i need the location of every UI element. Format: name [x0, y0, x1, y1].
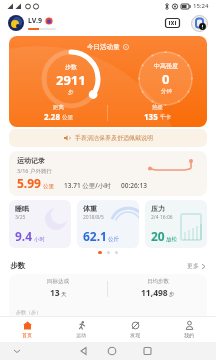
staticText: 目标达成 [47, 278, 69, 285]
staticText: 2018/8/5 [83, 214, 104, 221]
button[interactable]: 我的 [162, 317, 216, 342]
staticText: 热量 [152, 104, 163, 111]
staticText: 运动记录 [17, 156, 45, 165]
button[interactable]: 手表清洁保养及舒适佩戴说明 [9, 129, 207, 147]
staticText: 62.1 [83, 228, 107, 244]
staticText: 睡眠 [15, 204, 29, 213]
staticText: 3/16 户外骑行 [17, 167, 52, 175]
button[interactable]: 今日活动量 [9, 36, 207, 127]
staticText: 9.4 [15, 228, 33, 244]
staticText: 公斤 [108, 236, 119, 243]
staticText: 中高强度 [154, 62, 178, 70]
button[interactable]: 睡眠 [9, 200, 71, 248]
button[interactable]: 目标达成 [9, 274, 207, 316]
staticText: 小时 [34, 236, 45, 243]
staticText: 20 [151, 228, 165, 244]
button[interactable]: 体重 [77, 200, 139, 248]
staticText: 天 [61, 291, 67, 298]
staticText: 运动 [76, 332, 86, 338]
button[interactable]: 压力 [145, 200, 207, 248]
staticText: 步数 [10, 261, 25, 270]
staticText: 15:24 [193, 2, 209, 10]
staticText: LV.9 [28, 16, 42, 26]
staticText: 公里 [43, 183, 54, 190]
staticText: 更多 [187, 262, 199, 270]
staticText: 压力 [151, 204, 165, 213]
staticText: 步 [68, 89, 74, 96]
button[interactable] [8, 15, 24, 31]
staticText: 11,498 [141, 287, 168, 299]
staticText: 步 [169, 291, 175, 298]
staticText: 2.28 [44, 111, 60, 122]
staticText: 步数 [65, 63, 77, 71]
button[interactable] [163, 16, 181, 30]
staticText: 3/25 [15, 214, 26, 221]
button[interactable]: 更多 [187, 262, 206, 270]
button[interactable] [191, 15, 208, 32]
staticText: 135 [144, 111, 158, 122]
staticText: 13.71 公里/小时 [64, 181, 111, 190]
staticText: 公里 [62, 114, 73, 121]
staticText: 00:26:13 [121, 181, 147, 190]
button[interactable]: 首页 [0, 317, 54, 342]
staticText: 5.99 [17, 175, 41, 191]
staticText: 分钟 [161, 88, 172, 95]
staticText: 13 [50, 287, 60, 299]
staticText: 发现 [130, 332, 140, 338]
button[interactable]: 发现 [108, 317, 162, 342]
staticText: 我的 [184, 332, 194, 338]
staticText: 2/4 16:06 [151, 214, 173, 221]
button[interactable]: 运动 [54, 317, 108, 342]
button[interactable]: 运动记录 [9, 151, 207, 196]
staticText: 步数（步） [16, 309, 41, 315]
staticText: 0 [162, 70, 170, 88]
staticText: 体重 [83, 204, 97, 213]
staticText: 距离 [53, 104, 64, 111]
staticText: 今日活动量 [87, 43, 120, 51]
staticText: 千卡 [160, 114, 171, 121]
staticText: 日均步数 [147, 278, 169, 285]
staticText: 首页 [22, 332, 32, 338]
staticText: 放松 [166, 236, 177, 243]
staticText: 手表清洁保养及舒适佩戴说明 [75, 134, 153, 142]
staticText: 2911 [56, 71, 86, 89]
